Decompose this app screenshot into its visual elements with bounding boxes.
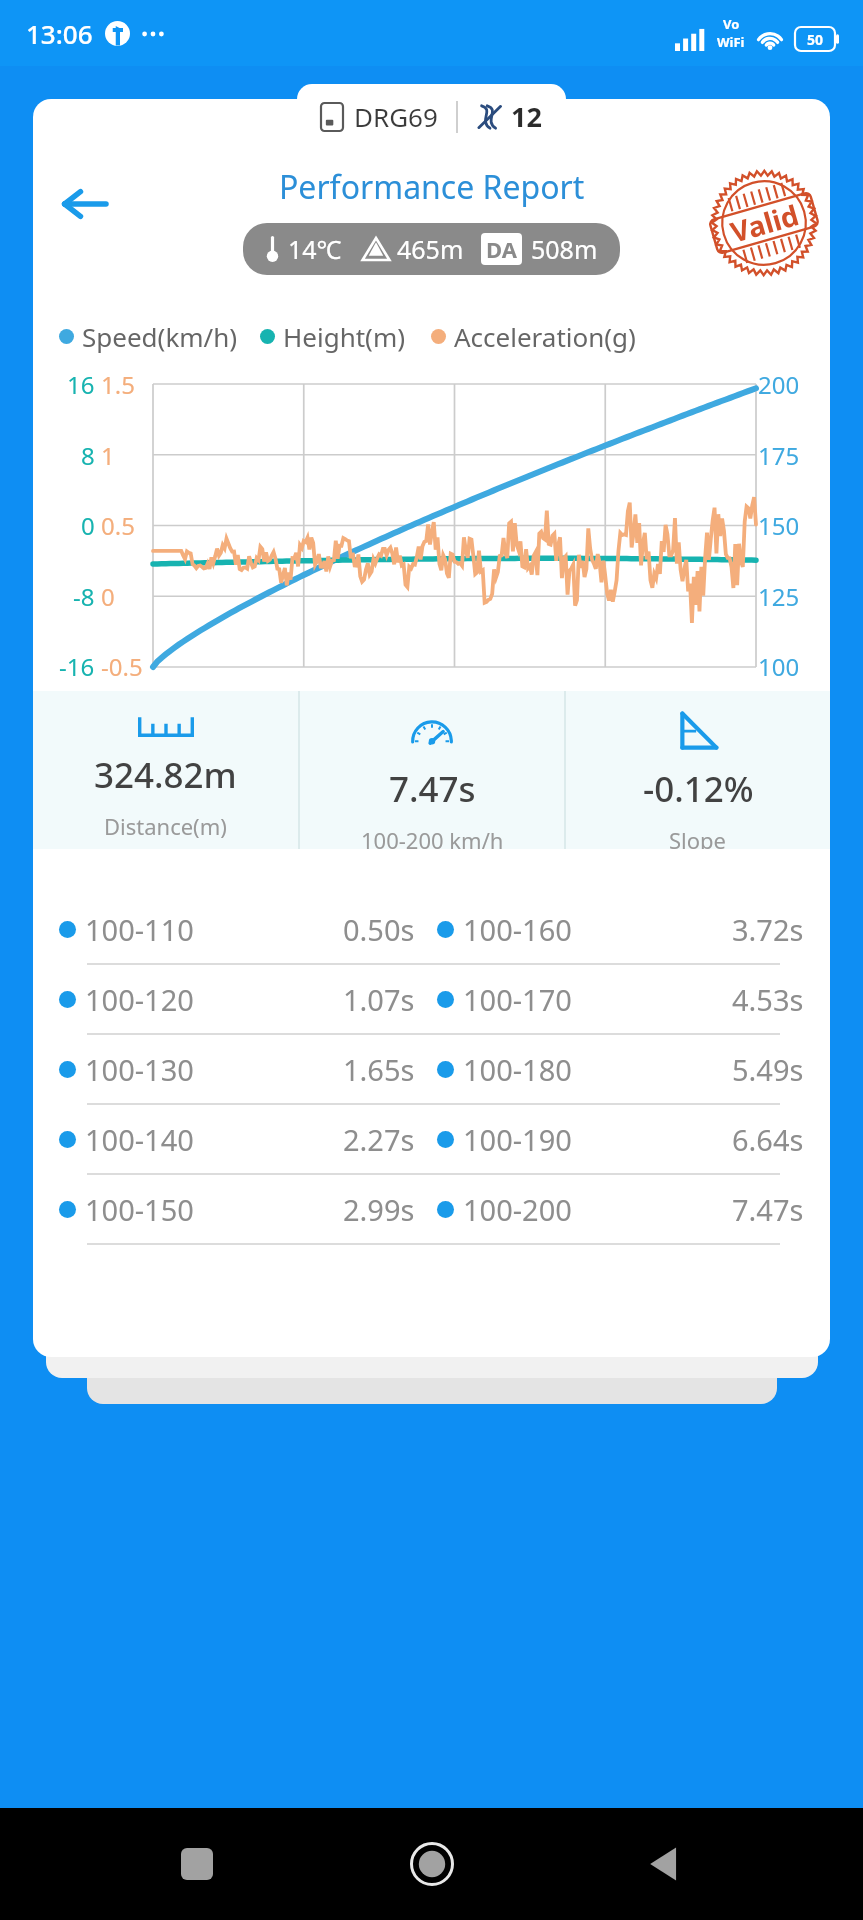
staticText: DRG69 <box>354 99 438 134</box>
staticText: WiFi <box>717 33 745 51</box>
staticText: -8 <box>73 580 95 613</box>
staticText: 2.99s <box>343 1190 415 1229</box>
staticText: 100-110 <box>85 910 194 949</box>
button[interactable]: 100-150 <box>59 1175 804 1243</box>
button[interactable]: -0.12% <box>566 691 830 849</box>
staticText: 100-160 <box>463 910 572 949</box>
staticText: 200 <box>758 368 800 401</box>
button[interactable]: Back <box>628 1826 704 1902</box>
staticText: 0 <box>81 509 95 542</box>
staticText: 465m <box>397 232 464 266</box>
staticText: Valid <box>726 195 803 251</box>
staticText: Performance Report <box>279 165 585 209</box>
staticText: 175 <box>758 439 800 472</box>
staticText: 4.53s <box>732 980 804 1019</box>
staticText: 2.27s <box>343 1120 415 1159</box>
staticText: Distance(m) <box>104 811 227 841</box>
staticText: -0.12% <box>643 765 754 813</box>
button[interactable]: 100-140 <box>59 1105 804 1173</box>
staticText: 100-190 <box>463 1120 572 1159</box>
staticText: 1.65s <box>343 1050 415 1089</box>
staticText: 14℃ <box>288 232 342 266</box>
button[interactable]: 100-130 <box>59 1035 804 1103</box>
staticText: 7.47s <box>732 1190 804 1229</box>
staticText: 0 <box>101 580 115 613</box>
staticText: 8 <box>81 439 95 472</box>
staticText: 7.47s <box>389 765 476 813</box>
button[interactable]: Back <box>49 169 119 239</box>
button[interactable]: DRG69 <box>297 84 566 149</box>
staticText: 50 <box>807 30 824 49</box>
staticText: 16 <box>67 368 95 401</box>
staticText: -16 <box>59 650 95 683</box>
staticText: 1.07s <box>343 980 415 1019</box>
staticText: 100-130 <box>85 1050 194 1089</box>
staticText: 1 <box>101 439 115 472</box>
staticText: Height(m) <box>283 319 405 354</box>
staticText: Vo <box>723 15 740 33</box>
button[interactable]: 7.47s <box>300 691 564 849</box>
staticText: -0.5 <box>101 650 143 683</box>
staticText: Speed(km/h) <box>82 319 238 354</box>
staticText: 100-140 <box>85 1120 194 1159</box>
staticText: 100-170 <box>463 980 572 1019</box>
button[interactable]: Home <box>394 1826 470 1902</box>
staticText: 508m <box>531 232 598 266</box>
staticText: 6.64s <box>732 1120 804 1159</box>
staticText: 0.50s <box>343 910 415 949</box>
staticText: 13:06 <box>26 16 93 51</box>
staticText: 324.82m <box>94 751 237 799</box>
staticText: 3.72s <box>732 910 804 949</box>
staticText: 100-200 <box>463 1190 572 1229</box>
staticText: 100-120 <box>85 980 194 1019</box>
staticText: 1.5 <box>101 368 135 401</box>
staticText: Acceleration(g) <box>454 319 636 354</box>
staticText: 0.5 <box>101 509 135 542</box>
staticText: 150 <box>758 509 800 542</box>
staticText: 5.49s <box>732 1050 804 1089</box>
staticText: 125 <box>758 580 800 613</box>
staticText: 100 <box>758 650 800 683</box>
staticText: 12 <box>511 98 542 135</box>
staticText: 100-200 km/h <box>361 825 504 849</box>
button[interactable]: Recents <box>159 1826 235 1902</box>
staticText: DA <box>486 234 517 264</box>
button[interactable]: 100-110 <box>59 895 804 963</box>
staticText: 100-150 <box>85 1190 194 1229</box>
button[interactable]: 100-120 <box>59 965 804 1033</box>
button[interactable]: 324.82m <box>33 691 298 849</box>
staticText: 100-180 <box>463 1050 572 1089</box>
staticText: Slope <box>669 825 727 849</box>
